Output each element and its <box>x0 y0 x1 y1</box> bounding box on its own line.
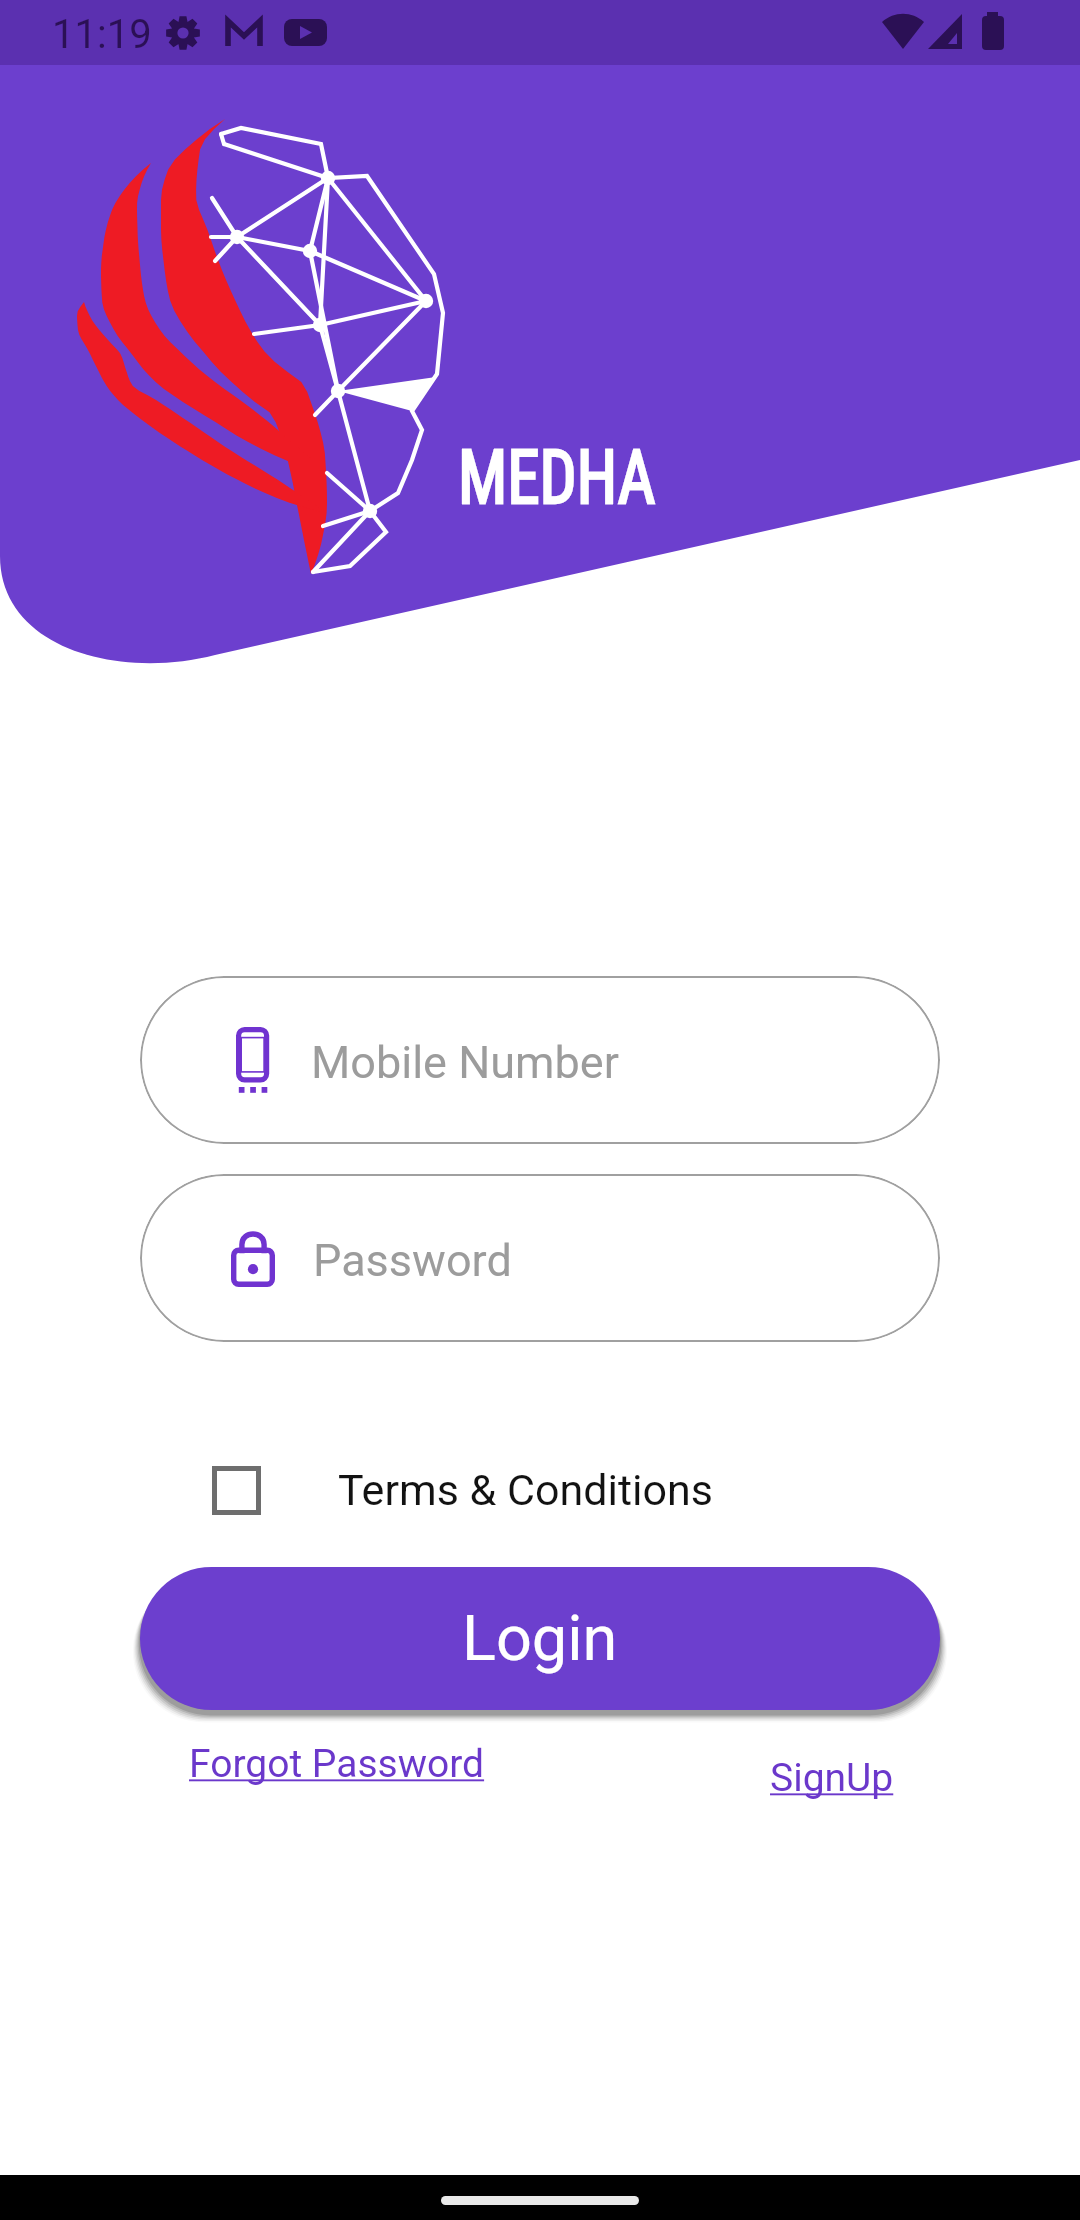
staticText: Password <box>313 1234 512 1287</box>
button[interactable]: Mobile Number <box>140 976 940 1144</box>
button[interactable]: Login <box>140 1567 940 1710</box>
staticText: SignUp <box>770 1755 894 1801</box>
button[interactable]: Forgot Password <box>189 1741 485 1787</box>
button[interactable]: Password <box>140 1174 940 1342</box>
staticText: Terms & Conditions <box>338 1465 713 1515</box>
staticText: Login <box>462 1602 618 1676</box>
button[interactable]: Terms and Conditions checkbox <box>212 1466 261 1515</box>
staticText: Forgot Password <box>189 1741 485 1787</box>
staticText: MEDHA <box>458 434 656 521</box>
button[interactable]: Accept Terms and Conditions <box>200 1450 713 1530</box>
button[interactable]: SignUp <box>770 1755 894 1801</box>
staticText: 11:19 <box>52 11 152 58</box>
staticText: Mobile Number <box>311 1036 619 1089</box>
